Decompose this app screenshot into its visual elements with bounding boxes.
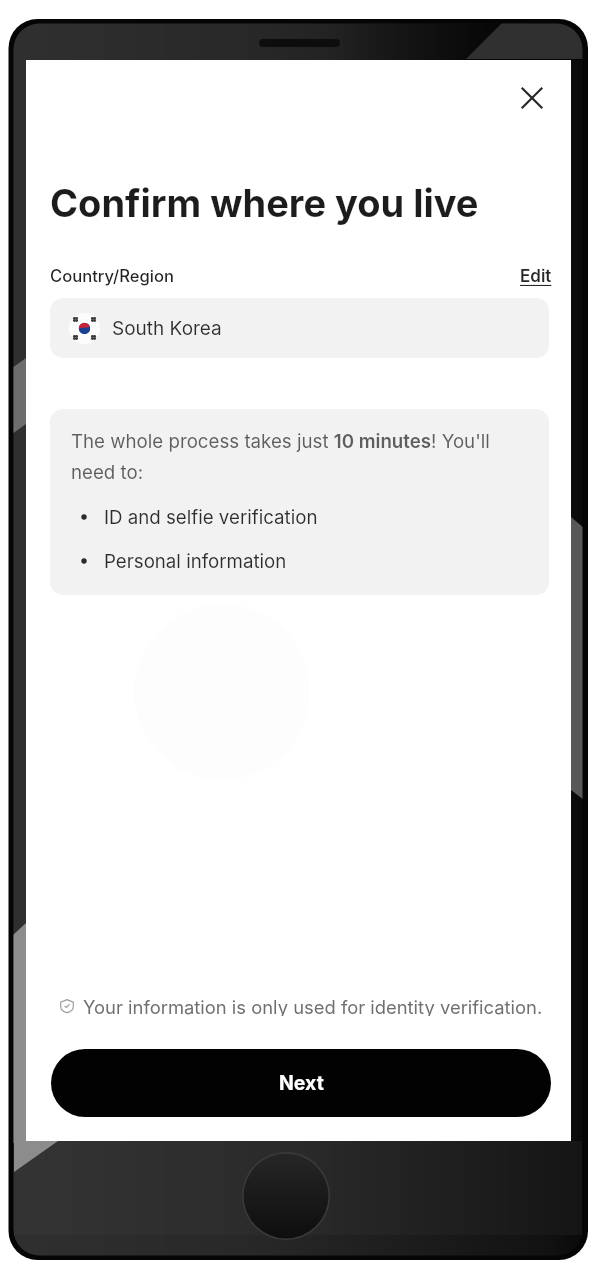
- staticText: Edit: [520, 266, 552, 286]
- staticText: Confirm where you live: [50, 180, 479, 226]
- staticText: Personal information: [104, 550, 287, 572]
- button[interactable]: Next: [51, 1049, 551, 1117]
- button[interactable]: South Korea: [50, 298, 549, 358]
- staticText: South Korea: [112, 317, 222, 340]
- staticText: ID and selfie verification: [104, 506, 318, 528]
- staticText: Country/Region: [50, 266, 174, 286]
- button[interactable]: Close: [510, 76, 554, 120]
- staticText: Your information is only used for identi…: [83, 996, 543, 1016]
- staticText: The whole process takes just 10 minutes!…: [71, 430, 491, 484]
- staticText: Next: [279, 1071, 324, 1095]
- button[interactable]: Edit: [515, 266, 552, 286]
